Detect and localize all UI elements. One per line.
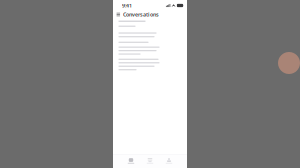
staticText: Conversations <box>123 11 159 18</box>
button[interactable]: Profile <box>162 158 176 164</box>
button[interactable]: Projects <box>143 158 157 164</box>
button[interactable]: Chats <box>124 158 138 164</box>
button[interactable]: Menu <box>116 11 121 17</box>
staticText: 9:41 <box>122 2 132 9</box>
